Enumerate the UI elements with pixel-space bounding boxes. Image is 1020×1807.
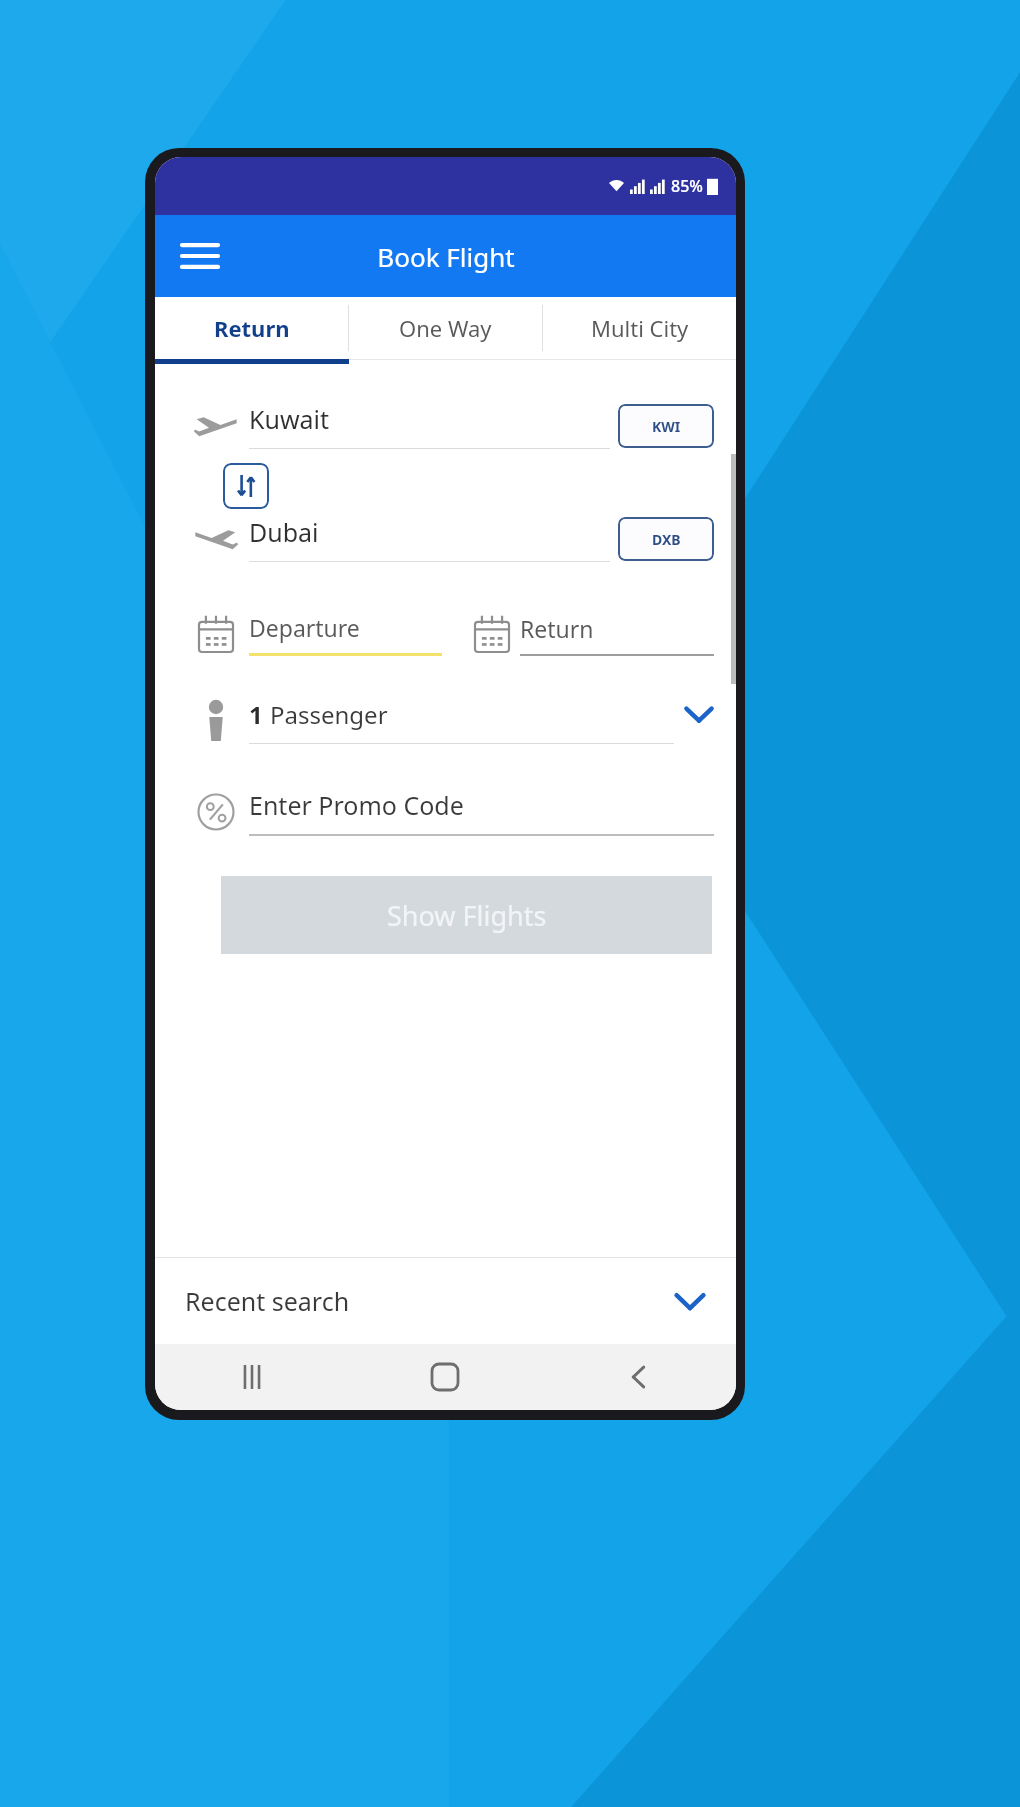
button[interactable]: Dubai xyxy=(249,515,610,562)
button[interactable]: Enter Promo Code xyxy=(249,788,714,836)
button[interactable]: Home xyxy=(348,1344,542,1410)
button[interactable]: Menu xyxy=(173,229,227,283)
button[interactable]: Recents xyxy=(155,1344,348,1410)
button[interactable]: Swap origin and destination xyxy=(223,463,269,509)
staticText: Enter Promo Code xyxy=(249,788,464,822)
staticText: KWI xyxy=(652,417,681,436)
staticText: Departure xyxy=(249,612,360,643)
staticText: Kuwait xyxy=(249,402,330,436)
staticText: Show Flights xyxy=(387,897,547,934)
staticText: Multi City xyxy=(591,313,689,343)
staticText: 1 xyxy=(249,698,263,731)
button[interactable]: Kuwait xyxy=(249,402,610,449)
button[interactable]: 1 xyxy=(249,698,714,744)
staticText: DXB xyxy=(652,530,681,549)
staticText: Dubai xyxy=(249,515,319,549)
button[interactable]: Show Flights xyxy=(221,876,712,954)
staticText: Passenger xyxy=(270,698,388,731)
button[interactable]: Return xyxy=(155,297,348,359)
staticText: Return xyxy=(520,613,594,644)
button[interactable]: KWI xyxy=(618,404,714,448)
button[interactable]: Multi City xyxy=(543,297,736,359)
button[interactable]: One Way xyxy=(349,297,542,359)
staticText: 85% xyxy=(671,175,703,197)
button[interactable]: Back xyxy=(542,1344,736,1410)
button[interactable]: Departure xyxy=(249,612,442,656)
button[interactable]: Recent search xyxy=(155,1258,736,1344)
staticText: Return xyxy=(214,313,290,343)
staticText: One Way xyxy=(399,313,492,343)
staticText: Recent search xyxy=(185,1284,350,1318)
staticText: Book Flight xyxy=(377,239,515,274)
button[interactable]: DXB xyxy=(618,517,714,561)
button[interactable]: Return xyxy=(520,613,714,656)
